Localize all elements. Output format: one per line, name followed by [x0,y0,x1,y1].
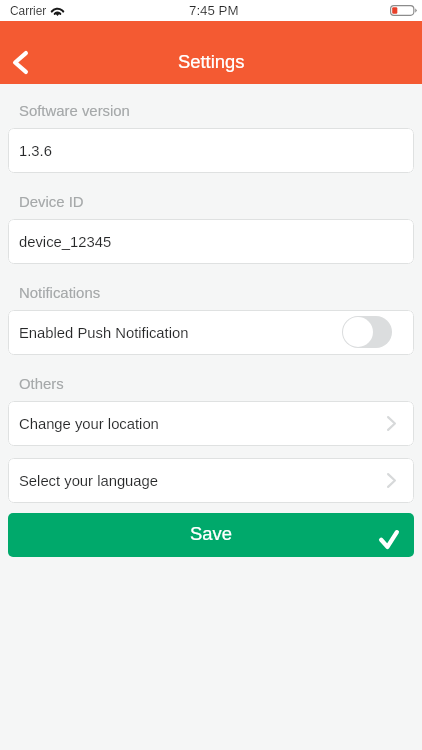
staticText: Device ID [19,194,84,211]
staticText: 7:45 PM [189,3,239,18]
staticText: Others [19,376,64,393]
staticText: 1.3.6 [19,143,52,160]
staticText: device_12345 [19,234,112,251]
button[interactable]: Back [0,40,42,84]
button[interactable]: Select your language [8,458,414,503]
staticText: Settings [178,51,245,72]
button[interactable]: Change your location [8,401,414,446]
staticText: Enabled Push Notification [19,325,189,342]
staticText: Select your language [19,473,159,490]
staticText: Notifications [19,285,101,302]
staticText: Software version [19,103,130,120]
staticText: Carrier [10,4,47,17]
staticText: Change your location [19,416,159,433]
button[interactable]: Save [8,513,414,557]
button[interactable]: Enabled Push Notification [342,316,392,348]
staticText: Save [190,523,232,544]
